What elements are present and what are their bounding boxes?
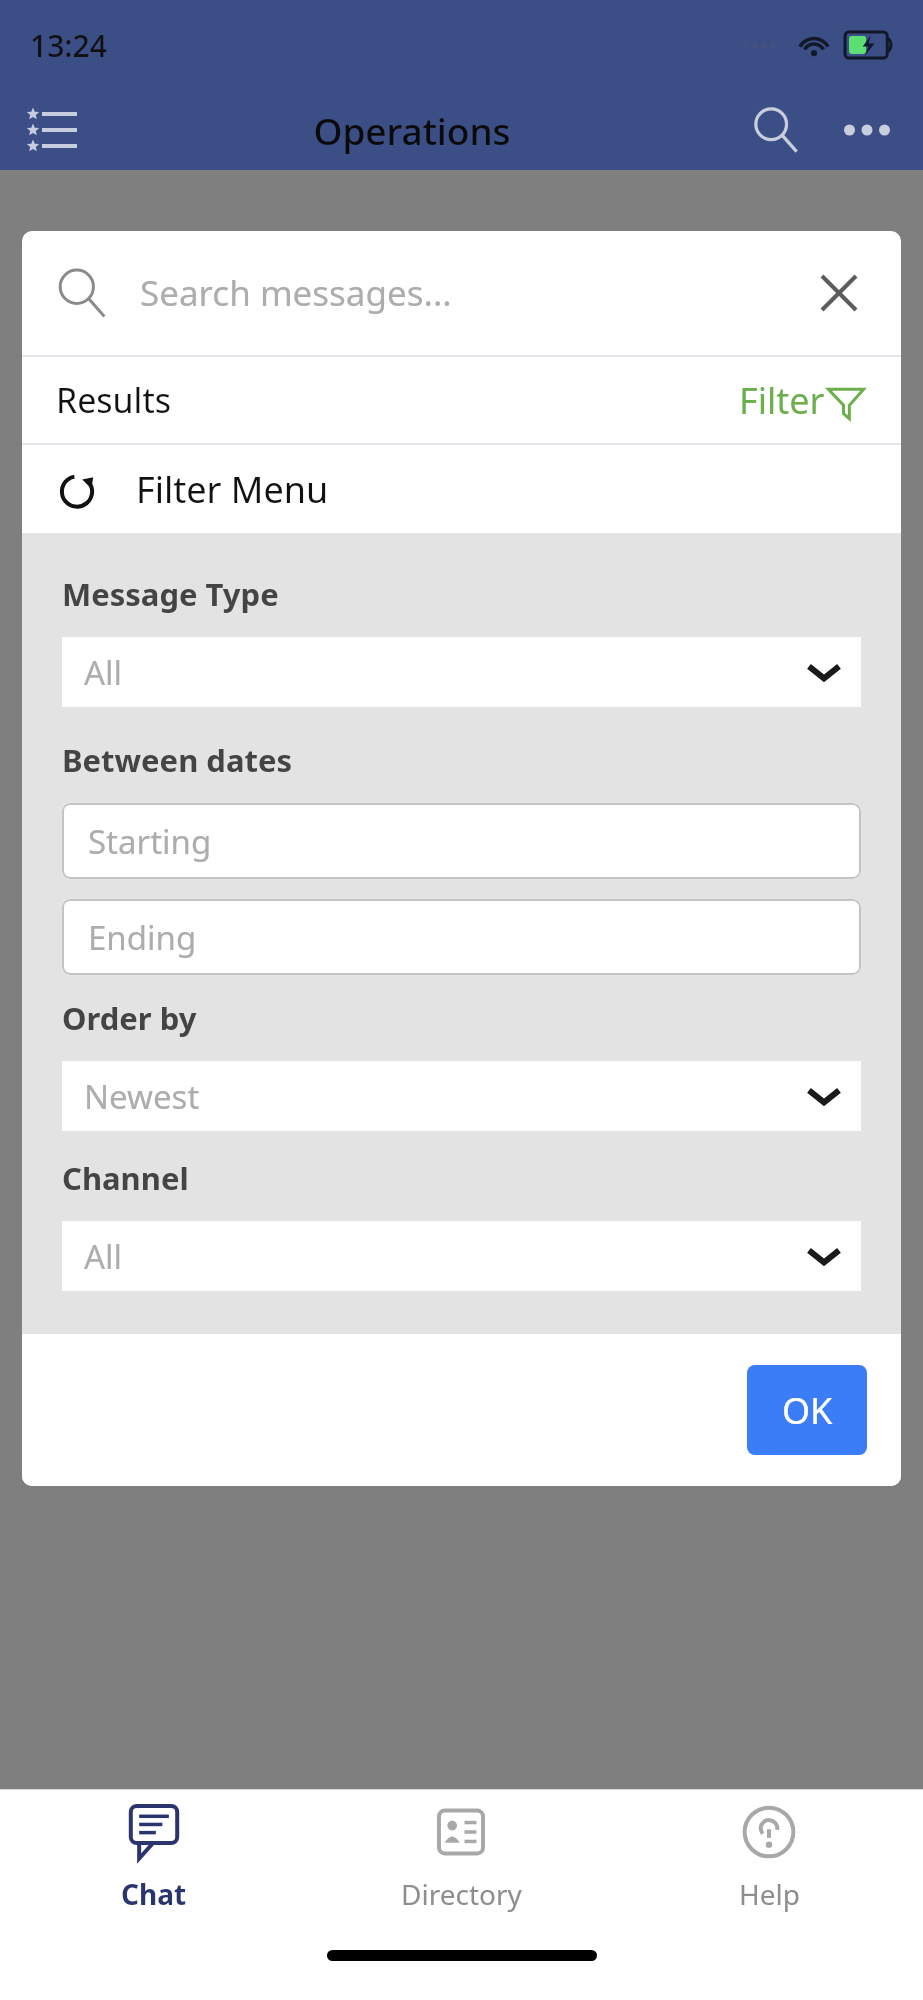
button[interactable]: Newest xyxy=(84,1061,839,1131)
staticText: OK xyxy=(782,1386,833,1435)
button[interactable]: Ending xyxy=(88,899,835,975)
staticText: Filter xyxy=(739,376,825,425)
staticText: Chat xyxy=(121,1875,187,1913)
staticText: Filter Menu xyxy=(136,465,329,514)
staticText: Between dates xyxy=(62,739,293,781)
button[interactable]: Directory xyxy=(307,1790,615,1925)
staticText: Channel xyxy=(62,1157,189,1199)
staticText: Ending xyxy=(88,915,197,960)
button[interactable]: Starting xyxy=(88,803,835,879)
staticText: Search messages... xyxy=(140,269,452,317)
button[interactable]: More options xyxy=(837,100,897,160)
staticText: Operations xyxy=(313,105,511,155)
staticText: Message Type xyxy=(62,573,279,615)
button[interactable]: Clear search xyxy=(811,265,867,321)
button[interactable]: Search xyxy=(741,95,811,165)
button[interactable]: Starred list menu xyxy=(20,98,84,162)
button[interactable]: OK xyxy=(747,1365,867,1455)
button[interactable]: Chat xyxy=(0,1790,307,1925)
button[interactable]: All xyxy=(84,1221,839,1291)
staticText: Results xyxy=(56,377,171,423)
staticText: All xyxy=(84,1234,123,1279)
staticText: Newest xyxy=(84,1074,200,1119)
button[interactable]: Help xyxy=(615,1790,923,1925)
staticText: Directory xyxy=(401,1875,522,1913)
button[interactable]: All xyxy=(84,637,839,707)
staticText: Help xyxy=(739,1875,800,1913)
staticText: Order by xyxy=(62,997,197,1039)
staticText: Starting xyxy=(88,819,212,864)
staticText: 13:24 xyxy=(30,25,107,66)
staticText: All xyxy=(84,650,123,695)
button[interactable]: Filter xyxy=(739,376,867,425)
button[interactable]: Filter Menu xyxy=(56,445,867,533)
